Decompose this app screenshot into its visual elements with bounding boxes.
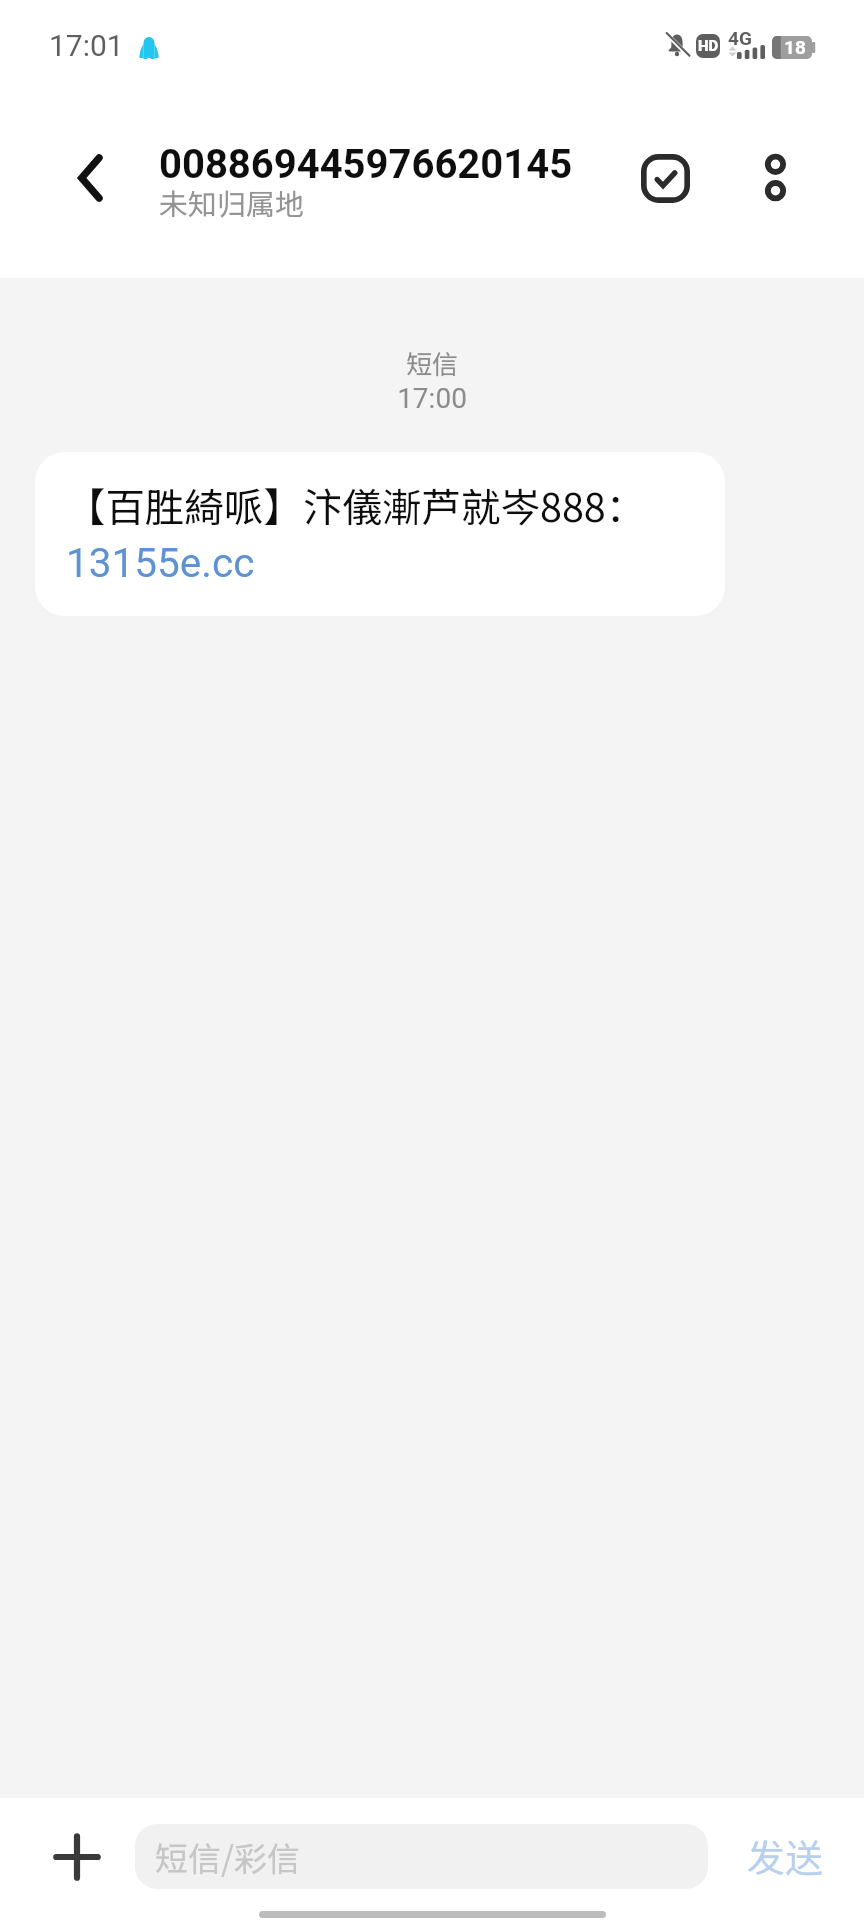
button[interactable]: More options [735, 137, 815, 217]
button[interactable]: 发送 [735, 1816, 836, 1895]
staticText: 18 [784, 36, 806, 58]
staticText: 4G [728, 27, 752, 49]
staticText: 短信 [0, 344, 864, 382]
staticText: HD [698, 37, 719, 55]
staticText: 短信/彩信 [155, 1833, 300, 1881]
staticText: 13155e.cc [66, 539, 255, 586]
staticText: 17:01 [49, 28, 124, 63]
button[interactable]: 【百胜綺哌】汴儀漸芦就岑888： [35, 452, 725, 616]
staticText: 【百胜綺哌】汴儀漸芦就岑888： [66, 476, 646, 533]
button[interactable]: Back [52, 140, 128, 216]
staticText: 008869445976620145 [159, 141, 573, 188]
staticText: 17:00 [0, 382, 864, 415]
staticText: 未知归属地 [159, 181, 305, 223]
button[interactable]: 短信/彩信 [135, 1824, 708, 1889]
button[interactable]: Add attachment [39, 1819, 115, 1895]
button[interactable]: Select messages [625, 138, 705, 218]
staticText: 发送 [747, 1828, 824, 1883]
